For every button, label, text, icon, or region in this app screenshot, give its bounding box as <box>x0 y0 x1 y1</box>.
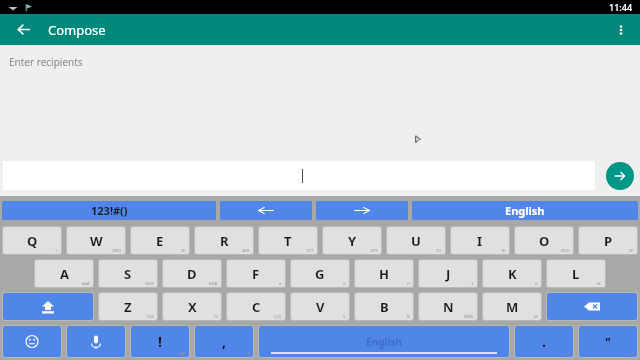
button[interactable]: C <box>227 293 285 320</box>
staticText: B <box>407 314 410 319</box>
staticText: ÑÑÑ <box>464 314 474 319</box>
staticText: C <box>252 298 261 316</box>
staticText: V <box>343 314 346 319</box>
staticText: N <box>443 298 454 316</box>
staticText: English <box>505 203 545 218</box>
button[interactable]: K <box>483 260 541 287</box>
button[interactable]: Send <box>606 162 634 190</box>
staticText: 1X <box>213 314 218 319</box>
button[interactable]: English <box>259 326 509 357</box>
staticText: H <box>407 281 410 286</box>
staticText: 8 <box>247 351 250 356</box>
staticText: K <box>535 281 538 286</box>
button[interactable]: Previous <box>220 201 312 220</box>
button[interactable]: H <box>355 260 413 287</box>
staticText: G <box>315 265 325 283</box>
button[interactable]: Back <box>8 14 39 45</box>
button[interactable]: Q <box>3 227 61 254</box>
button[interactable]: I <box>451 227 509 254</box>
staticText: R <box>220 232 229 250</box>
staticText: 3E <box>181 248 186 253</box>
staticText: 0P <box>629 248 634 253</box>
button[interactable]: P <box>579 227 637 254</box>
button[interactable]: Enter recipients <box>9 55 83 69</box>
button[interactable]: E <box>131 227 189 254</box>
staticText: E <box>156 232 164 250</box>
staticText: ø <box>279 281 282 286</box>
staticText: ÇÇÇ <box>274 314 282 319</box>
button[interactable]: D <box>163 260 221 287</box>
staticText: B <box>380 298 389 316</box>
button[interactable]: ! <box>131 326 189 357</box>
staticText: P <box>604 232 613 250</box>
staticText: , <box>222 332 226 351</box>
staticText: 4RR <box>242 248 250 253</box>
button[interactable]: B <box>355 293 413 320</box>
staticText: V <box>316 298 325 316</box>
staticText: £L <box>597 281 602 286</box>
button[interactable]: U <box>387 227 445 254</box>
staticText: Compose <box>48 21 106 39</box>
button[interactable]: F <box>227 260 285 287</box>
button[interactable]: Voice input <box>67 326 125 357</box>
staticText: J <box>446 265 451 283</box>
staticText: 8I <box>502 248 506 253</box>
button[interactable]: T <box>259 227 317 254</box>
staticText: K <box>508 265 517 283</box>
button[interactable] <box>3 161 595 190</box>
staticText: " <box>605 334 611 350</box>
staticText: Q <box>27 232 38 250</box>
button[interactable]: " <box>579 326 637 357</box>
staticText: G <box>343 281 346 286</box>
button[interactable]: Next <box>316 201 408 220</box>
staticText: 2ZZ <box>147 314 154 319</box>
button[interactable]: S <box>99 260 157 287</box>
staticText: O <box>539 232 550 250</box>
staticText: §SSS <box>145 281 154 286</box>
staticText: Y <box>348 232 357 250</box>
staticText: 11:44 <box>609 1 633 13</box>
button[interactable]: M <box>483 293 541 320</box>
button[interactable]: . <box>515 326 573 357</box>
button[interactable]: Z <box>99 293 157 320</box>
staticText: L <box>572 265 580 283</box>
staticText: Z <box>124 298 132 316</box>
staticText: J <box>472 281 474 286</box>
staticText: ÐÐÅ <box>209 281 218 286</box>
button[interactable]: N <box>419 293 477 320</box>
button[interactable]: V <box>291 293 349 320</box>
staticText: 123!#() <box>91 203 128 218</box>
button[interactable]: G <box>291 260 349 287</box>
staticText: 7U <box>436 248 442 253</box>
staticText: D <box>187 265 197 283</box>
staticText: English <box>366 335 402 349</box>
staticText: 5TT <box>307 248 314 253</box>
button[interactable]: , <box>195 326 253 357</box>
button[interactable]: J <box>419 260 477 287</box>
button[interactable]: W <box>67 227 125 254</box>
button[interactable]: O <box>515 227 573 254</box>
staticText: 1 <box>55 248 58 253</box>
button[interactable]: Backspace <box>547 293 637 320</box>
button[interactable]: R <box>195 227 253 254</box>
button[interactable]: Emoji <box>3 326 61 357</box>
staticText: U <box>411 232 421 250</box>
button[interactable]: Y <box>323 227 381 254</box>
staticText: 9OO <box>561 248 570 253</box>
button[interactable]: English <box>412 201 638 220</box>
staticText: WP <box>179 351 186 356</box>
staticText: AAÅ <box>82 281 90 286</box>
staticText: ! <box>158 332 162 351</box>
button[interactable]: More options <box>605 14 636 45</box>
staticText: X <box>188 298 197 316</box>
staticText: . <box>542 332 546 351</box>
staticText: H <box>379 265 389 283</box>
button[interactable]: L <box>547 260 605 287</box>
button[interactable]: Shift <box>3 293 93 320</box>
button[interactable]: X <box>163 293 221 320</box>
button[interactable]: 123!#() <box>2 201 216 220</box>
button[interactable]: A <box>35 260 93 287</box>
staticText: M <box>534 314 538 319</box>
staticText: T <box>284 232 292 250</box>
staticText: A <box>60 265 69 283</box>
